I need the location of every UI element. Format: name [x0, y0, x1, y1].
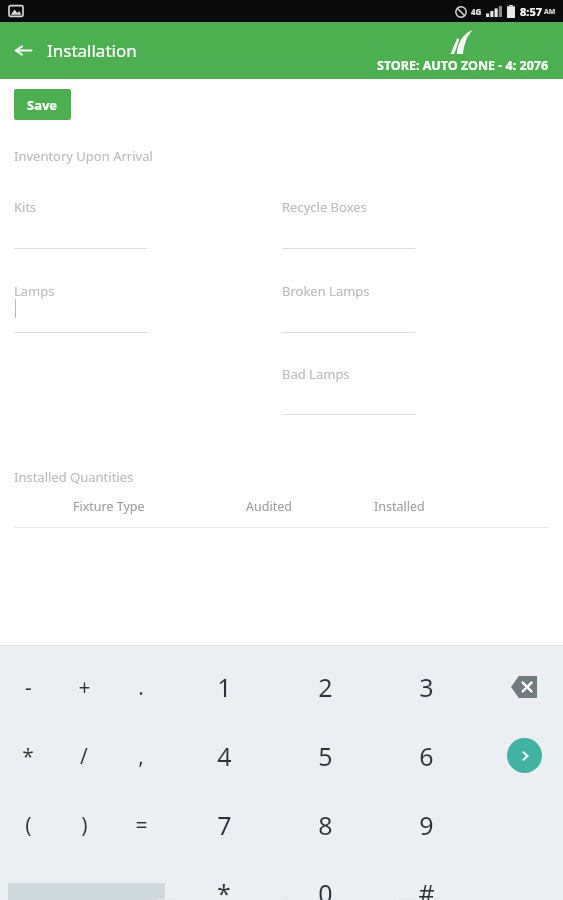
staticText: Inventory Upon Arrival [14, 147, 153, 165]
staticText: 1 [217, 670, 232, 704]
staticText: STORE: AUTO ZONE - 4: 2076 [377, 57, 549, 74]
button[interactable]: Backspace [500, 665, 548, 709]
staticText: Audited [246, 498, 292, 515]
button[interactable]: ( [2, 803, 54, 847]
button[interactable]: , [115, 734, 167, 778]
staticText: 3 [419, 670, 434, 704]
staticText: * [217, 876, 231, 900]
staticText: AM [544, 7, 556, 17]
button[interactable]: * [2, 734, 54, 778]
staticText: 5 [318, 739, 333, 773]
button[interactable]: 9 [394, 801, 458, 849]
staticText: Save [27, 96, 58, 114]
button[interactable]: - [2, 665, 54, 709]
button[interactable]: . [115, 665, 167, 709]
other: Back [14, 41, 33, 60]
staticText: , [138, 742, 144, 771]
button[interactable]: 2 [293, 663, 357, 711]
staticText: 2 [318, 670, 333, 704]
button[interactable]: Next [507, 738, 542, 773]
button[interactable]: # [394, 869, 458, 900]
button[interactable]: 7 [192, 801, 256, 849]
staticText: Installed [374, 498, 425, 515]
staticText: ( [25, 811, 32, 840]
button[interactable]: / [58, 734, 110, 778]
staticText: 8 [318, 808, 333, 842]
button[interactable]: ) [58, 803, 110, 847]
staticText: Fixture Type [73, 498, 145, 515]
button[interactable]: * [192, 869, 256, 900]
staticText: * [22, 742, 34, 771]
button[interactable]: Back [0, 33, 149, 68]
staticText: # [418, 876, 435, 900]
button[interactable]: 8 [293, 801, 357, 849]
staticText: ) [81, 811, 88, 840]
staticText: Broken Lamps [282, 282, 370, 300]
staticText: Bad Lamps [282, 365, 350, 383]
staticText: 9 [419, 808, 434, 842]
staticText: 0 [318, 876, 333, 900]
staticText: Lamps [14, 282, 55, 300]
staticText: Recycle Boxes [282, 198, 367, 216]
staticText: 6 [419, 739, 434, 773]
staticText: - [25, 673, 32, 702]
staticText: / [80, 742, 88, 771]
staticText: Kits [14, 198, 37, 216]
staticText: Installed Quantities [14, 468, 134, 486]
staticText: . [138, 673, 144, 702]
button[interactable]: 4 [192, 732, 256, 780]
button[interactable]: 6 [394, 732, 458, 780]
staticText: Installation [47, 39, 137, 62]
staticText: + [78, 673, 91, 702]
button[interactable]: 5 [293, 732, 357, 780]
button[interactable]: = [115, 803, 167, 847]
button[interactable]: 0 [293, 869, 357, 900]
button[interactable]: Save [14, 89, 71, 120]
button[interactable]: + [58, 665, 110, 709]
button[interactable]: 1 [192, 663, 256, 711]
button[interactable]: 3 [394, 663, 458, 711]
staticText: 7 [217, 808, 232, 842]
staticText: = [135, 811, 148, 840]
staticText: 4G [471, 6, 482, 17]
staticText: 4 [217, 739, 232, 773]
staticText: 8:57 [520, 4, 542, 19]
